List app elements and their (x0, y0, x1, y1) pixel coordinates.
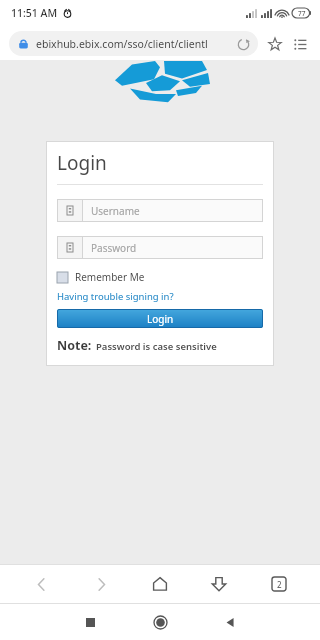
staticText: Username (91, 204, 140, 218)
button[interactable]: Back (213, 605, 247, 639)
staticText: ebixhub.ebix.com/sso/client/clientl (36, 37, 234, 51)
button[interactable]: Password (57, 236, 263, 259)
staticText: Note: (57, 337, 92, 354)
staticText: 77 (298, 9, 306, 18)
button[interactable]: Login (57, 309, 263, 328)
button[interactable]: Home (142, 566, 178, 602)
staticText: Password (91, 241, 137, 255)
other: Ebix logo (110, 60, 210, 106)
staticText: Login (147, 312, 174, 326)
button[interactable]: Having trouble signing in? (57, 290, 174, 303)
staticText: 2 (277, 579, 282, 590)
button[interactable]: Back (23, 566, 59, 602)
staticText: 11:51 AM (11, 6, 58, 20)
button[interactable]: Recent apps (73, 605, 107, 639)
button[interactable]: Tabs (261, 566, 297, 602)
staticText: Password is case sensitive (96, 340, 217, 353)
button[interactable]: Downloads (201, 566, 237, 602)
button[interactable]: Forward (83, 566, 119, 602)
button[interactable]: Bookmark (264, 33, 286, 55)
button[interactable]: Username (57, 199, 263, 222)
button[interactable]: Reload (234, 35, 252, 53)
button[interactable]: Home (143, 605, 177, 639)
button[interactable]: Remember Me (57, 270, 145, 284)
staticText: Remember Me (75, 270, 145, 284)
staticText: Login (57, 150, 107, 176)
button[interactable]: Menu (289, 33, 311, 55)
button[interactable]: ebixhub.ebix.com/sso/client/clientl (9, 31, 258, 56)
staticText: Having trouble signing in? (57, 290, 174, 303)
